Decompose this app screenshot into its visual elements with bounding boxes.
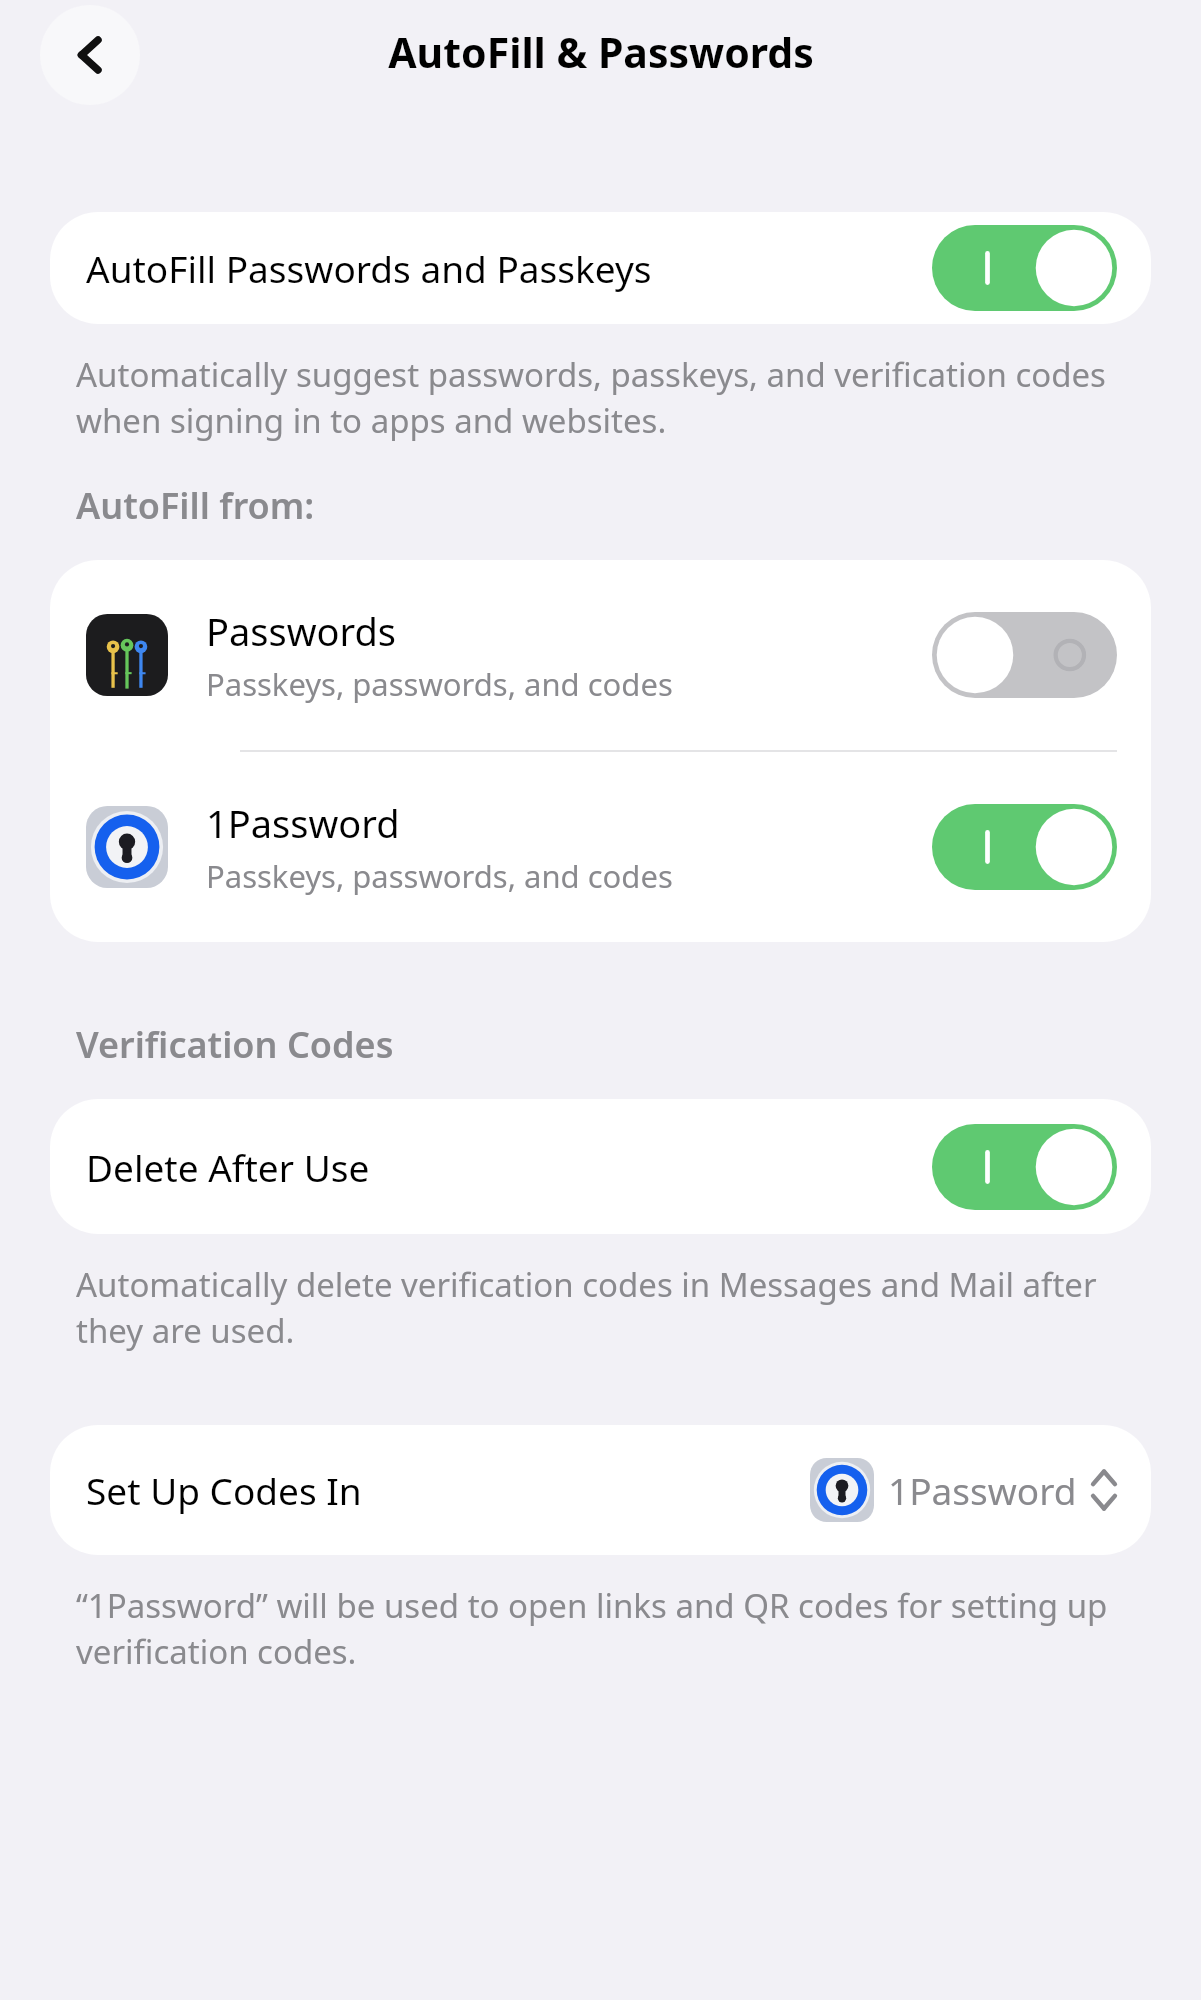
button[interactable]: Set Up Codes In [50, 1425, 1151, 1555]
staticText: AutoFill Passwords and Passkeys [86, 243, 932, 293]
staticText: 1Password [888, 1465, 1077, 1515]
button[interactable]: Toggle on [932, 1124, 1117, 1210]
button[interactable]: Toggle on [932, 225, 1117, 311]
button[interactable]: Passwords [50, 560, 1151, 750]
staticText: Passkeys, passwords, and codes [206, 855, 673, 897]
button[interactable]: 1Password [50, 752, 1151, 942]
staticText: Automatically suggest passwords, passkey… [76, 352, 1131, 443]
staticText: AutoFill & Passwords [388, 24, 814, 80]
button[interactable]: Back [40, 5, 140, 105]
staticText: AutoFill from: [76, 481, 315, 530]
button[interactable]: Delete After Use [50, 1099, 1151, 1234]
button[interactable]: Toggle off [932, 612, 1117, 698]
button[interactable]: AutoFill Passwords and Passkeys [50, 212, 1151, 324]
staticText: Automatically delete verification codes … [76, 1262, 1131, 1353]
staticText: Passwords [206, 605, 397, 657]
staticText: 1Password [206, 797, 400, 849]
staticText: “1Password” will be used to open links a… [76, 1583, 1131, 1674]
staticText: Verification Codes [76, 1020, 394, 1069]
staticText: Delete After Use [86, 1142, 932, 1192]
button[interactable]: Toggle on [932, 804, 1117, 890]
staticText: Set Up Codes In [86, 1465, 810, 1515]
staticText: Passkeys, passwords, and codes [206, 663, 673, 705]
